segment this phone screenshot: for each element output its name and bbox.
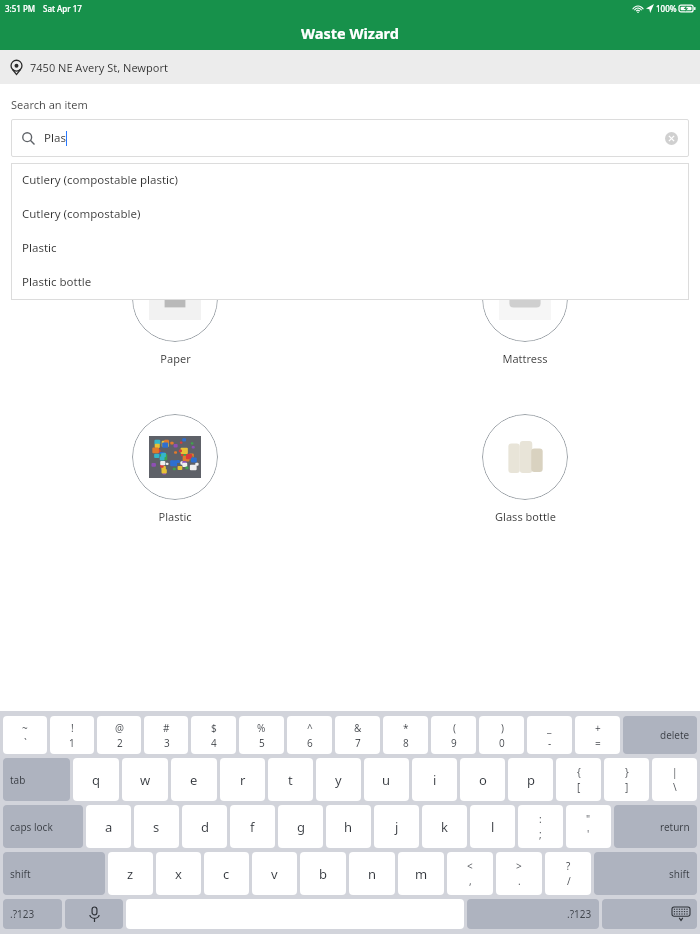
button[interactable]: Glass bottle: [482, 414, 568, 524]
button[interactable]: Search: [11, 119, 689, 157]
staticText: u: [382, 771, 391, 789]
staticText: -: [548, 736, 552, 750]
staticText: >: [516, 859, 522, 873]
button[interactable]: shift: [594, 852, 697, 895]
button[interactable]: n: [349, 852, 395, 895]
button[interactable]: g: [278, 805, 323, 848]
button[interactable]: tab: [3, 758, 70, 801]
staticText: `: [24, 736, 27, 750]
button[interactable]: Paper: [132, 256, 218, 366]
button[interactable]: *: [383, 716, 428, 754]
button[interactable]: s: [134, 805, 179, 848]
staticText: c: [223, 865, 230, 883]
staticText: ^: [307, 721, 313, 735]
button[interactable]: Clear: [665, 132, 678, 145]
staticText: 3: [164, 736, 170, 750]
button[interactable]: ~: [3, 716, 47, 754]
staticText: Mattress: [502, 351, 548, 366]
staticText: Plastic: [158, 509, 192, 524]
staticText: #: [163, 721, 170, 735]
button[interactable]: {: [556, 758, 601, 801]
button[interactable]: z: [108, 852, 153, 895]
staticText: <: [467, 859, 473, 873]
button[interactable]: ^: [287, 716, 332, 754]
staticText: *: [403, 721, 409, 735]
button[interactable]: <: [447, 852, 493, 895]
staticText: \: [673, 780, 677, 794]
button[interactable]: ?: [545, 852, 591, 895]
button[interactable]: Location: [0, 50, 700, 84]
staticText: g: [297, 818, 305, 836]
button[interactable]: x: [156, 852, 201, 895]
button[interactable]: $: [191, 716, 236, 754]
button[interactable]: r: [220, 758, 265, 801]
button[interactable]: t: [268, 758, 313, 801]
staticText: Waste Wizard: [301, 23, 399, 43]
button[interactable]: f: [230, 805, 275, 848]
button[interactable]: Cutlery (compostable plastic): [11, 163, 689, 197]
button[interactable]: u: [364, 758, 409, 801]
button[interactable]: y: [316, 758, 361, 801]
button[interactable]: Plastic: [11, 231, 689, 265]
button[interactable]: Cutlery (compostable): [11, 197, 689, 231]
staticText: 0: [499, 736, 505, 750]
button[interactable]: Plastic bottle: [11, 265, 689, 299]
button[interactable]: .?123: [467, 899, 599, 929]
button[interactable]: |: [652, 758, 697, 801]
button[interactable]: l: [470, 805, 515, 848]
button[interactable]: i: [412, 758, 457, 801]
staticText: +: [595, 721, 601, 735]
button[interactable]: +: [575, 716, 620, 754]
button[interactable]: caps lock: [3, 805, 83, 848]
button[interactable]: Mattress: [482, 256, 568, 366]
button[interactable]: ": [566, 805, 611, 848]
button[interactable]: }: [604, 758, 649, 801]
staticText: 4: [211, 736, 217, 750]
button[interactable]: q: [73, 758, 119, 801]
button[interactable]: delete: [623, 716, 697, 754]
button[interactable]: (: [431, 716, 476, 754]
staticText: |: [672, 765, 678, 779]
button[interactable]: .?123: [3, 899, 62, 929]
button[interactable]: b: [300, 852, 346, 895]
button[interactable]: Hide keyboard: [602, 899, 697, 929]
button[interactable]: j: [374, 805, 419, 848]
staticText: 3:51 PM: [5, 3, 36, 14]
staticText: delete: [660, 728, 690, 742]
staticText: Glass bottle: [495, 509, 556, 524]
button[interactable]: p: [508, 758, 553, 801]
button[interactable]: o: [460, 758, 505, 801]
button[interactable]: return: [614, 805, 697, 848]
button[interactable]: _: [527, 716, 572, 754]
staticText: Cutlery (compostable): [22, 206, 141, 222]
button[interactable]: a: [86, 805, 131, 848]
staticText: 7: [355, 736, 361, 750]
staticText: z: [127, 865, 134, 883]
button[interactable]: >: [496, 852, 542, 895]
button[interactable]: %: [239, 716, 284, 754]
button[interactable]: Plastic: [132, 414, 218, 524]
button[interactable]: h: [326, 805, 371, 848]
other: Search: [22, 132, 35, 145]
button[interactable]: m: [398, 852, 444, 895]
button[interactable]: @: [97, 716, 141, 754]
button[interactable]: Voice input: [65, 899, 123, 929]
button[interactable]: e: [171, 758, 217, 801]
button[interactable]: #: [144, 716, 188, 754]
button[interactable]: :: [518, 805, 563, 848]
staticText: %: [257, 721, 266, 735]
button[interactable]: w: [122, 758, 168, 801]
button[interactable]: ): [479, 716, 524, 754]
staticText: p: [527, 771, 535, 789]
button[interactable]: &: [335, 716, 380, 754]
button[interactable]: !: [50, 716, 94, 754]
button[interactable]: v: [252, 852, 297, 895]
staticText: }: [625, 765, 629, 779]
staticText: j: [395, 818, 399, 836]
staticText: return: [660, 820, 690, 834]
button[interactable]: d: [182, 805, 227, 848]
button[interactable]: k: [422, 805, 467, 848]
button[interactable]: c: [204, 852, 249, 895]
button[interactable]: shift: [3, 852, 105, 895]
